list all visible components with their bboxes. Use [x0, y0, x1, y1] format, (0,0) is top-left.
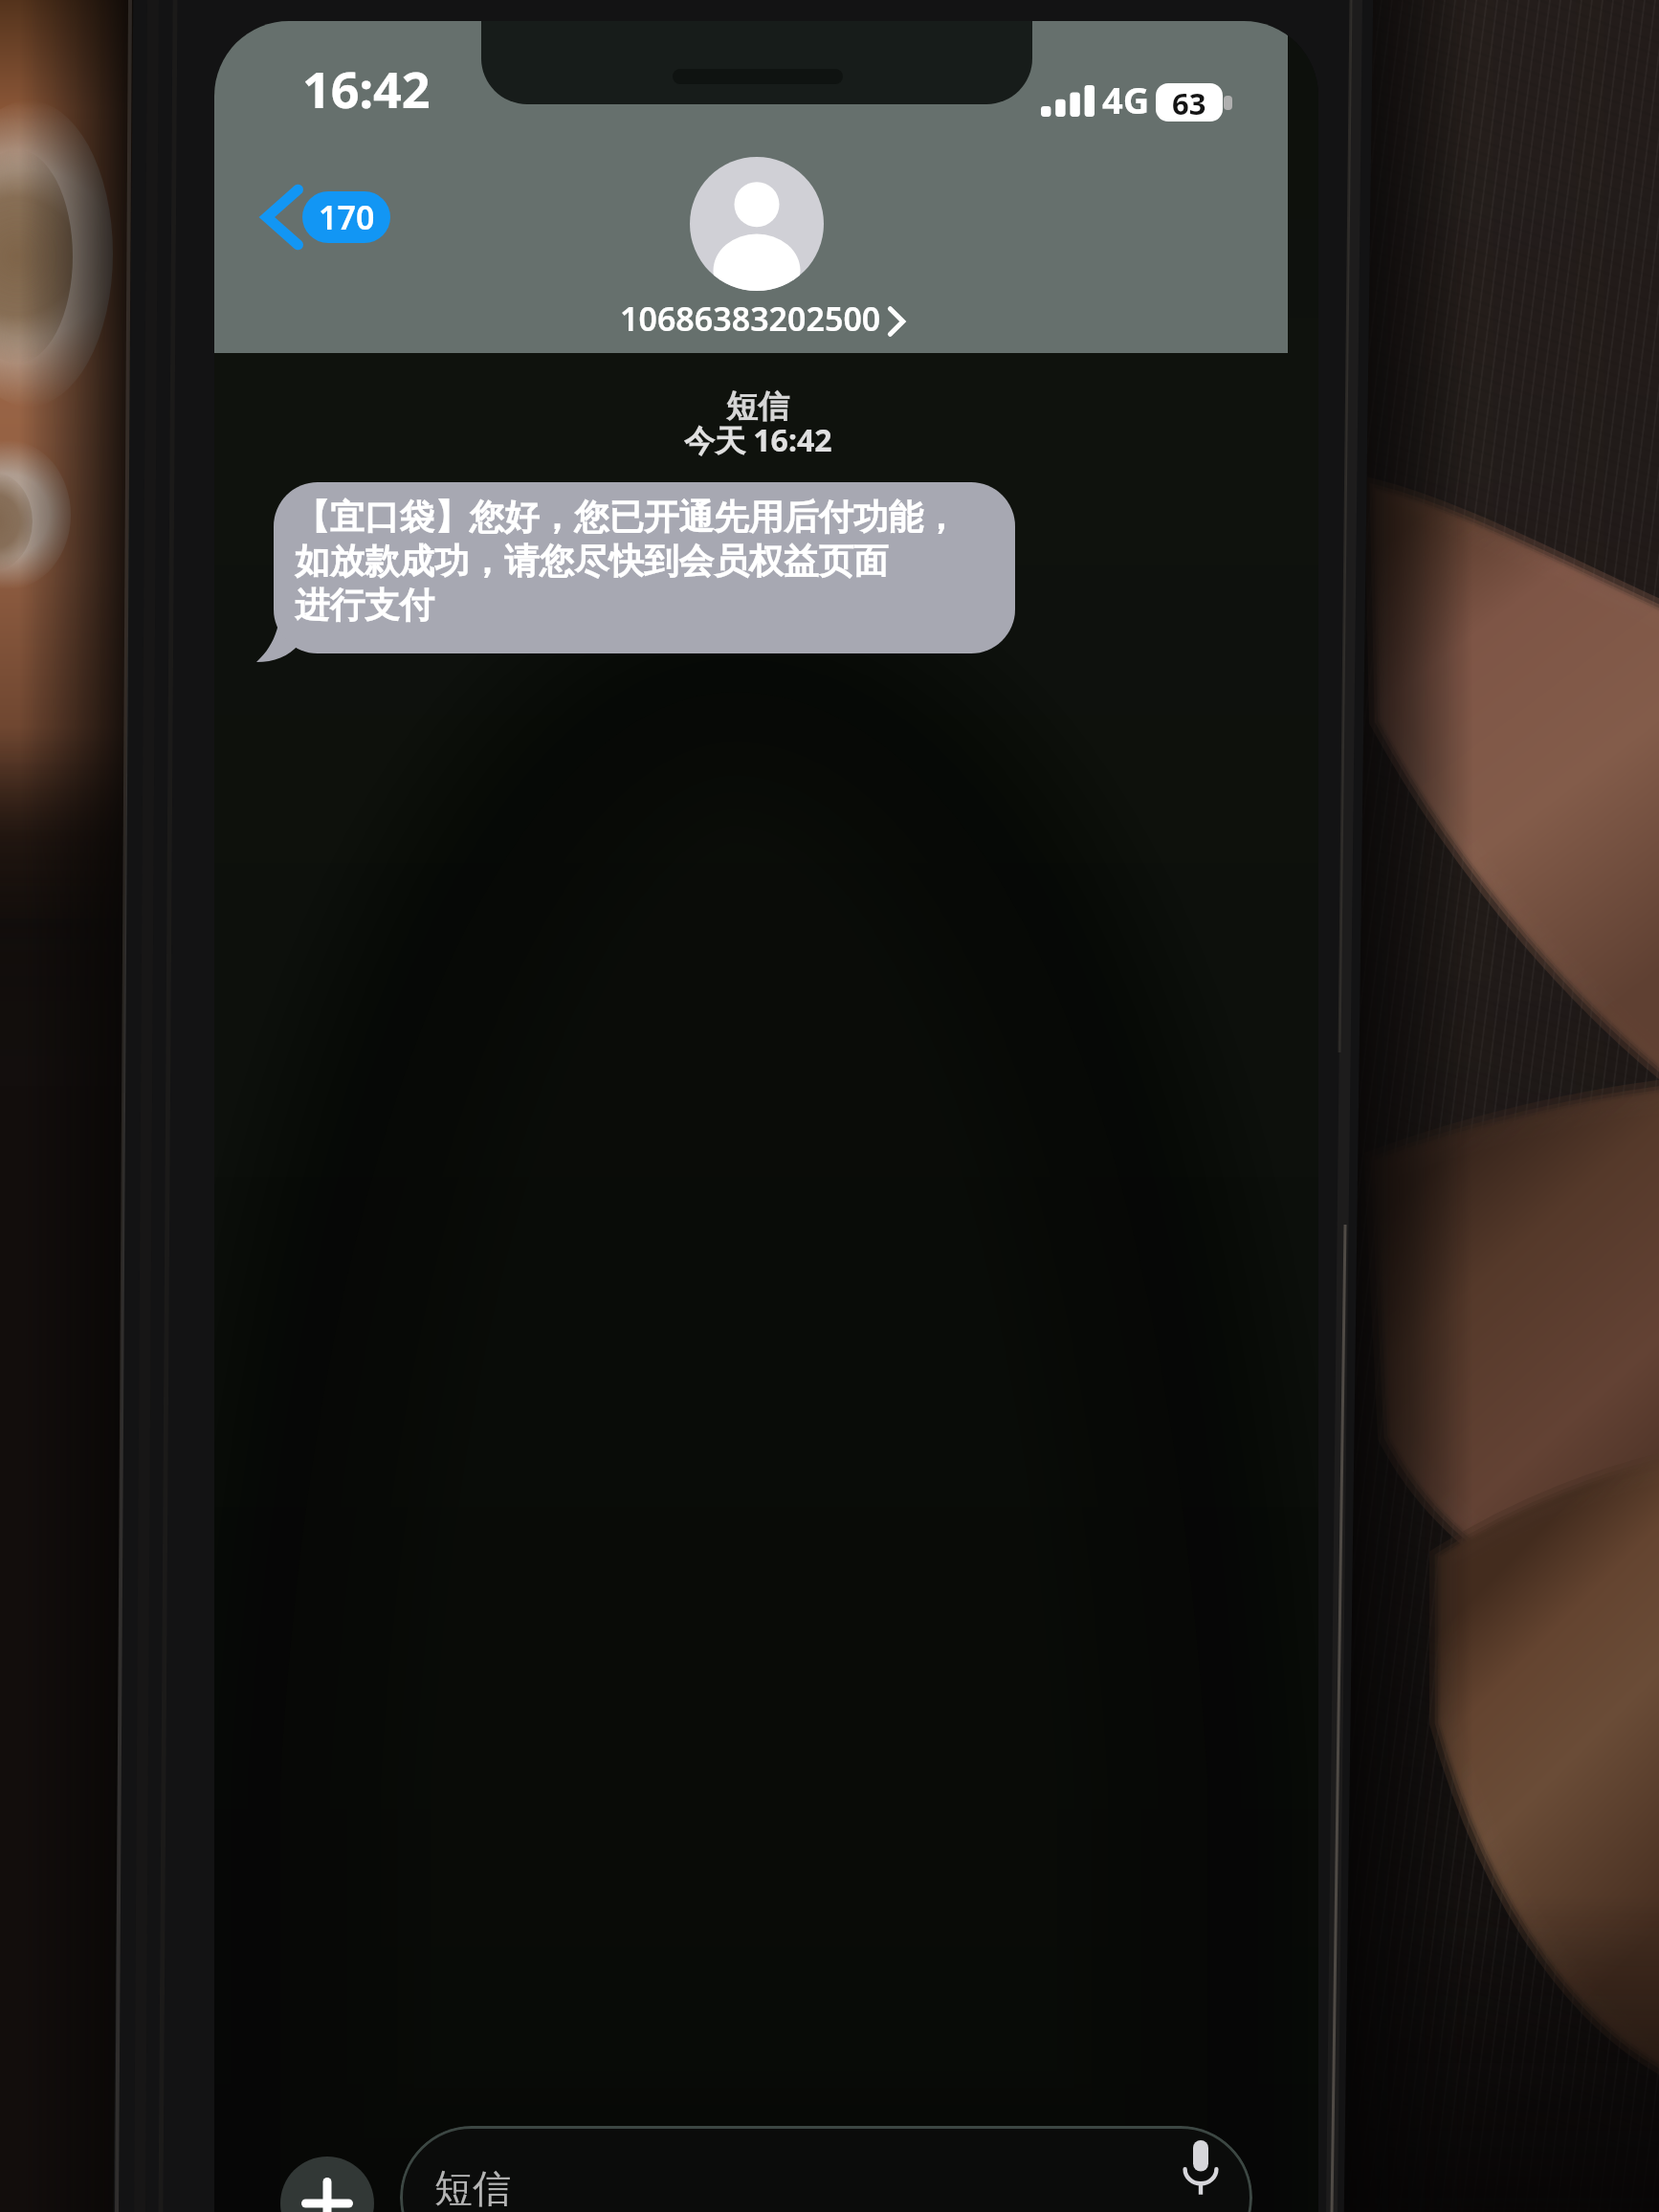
staticText: 短信	[434, 2164, 511, 2212]
staticText: 短信	[726, 387, 789, 427]
staticText: 170	[319, 195, 375, 239]
button[interactable]: 短信	[400, 2126, 1252, 2212]
staticText: 16:42	[302, 55, 431, 122]
staticText: 进行支付	[295, 584, 434, 628]
staticText: 10686383202500	[620, 297, 881, 341]
other: Voice message	[1182, 2140, 1220, 2196]
button[interactable]: Add attachment	[280, 2157, 374, 2212]
staticText: 如放款成功，请您尽快到会员权益页面	[295, 540, 889, 584]
button[interactable]: 【宜口袋】您好，您已开通先用后付功能，	[274, 482, 1015, 653]
button[interactable]: Contact details	[690, 157, 824, 291]
staticText: 4G	[1102, 75, 1150, 124]
button[interactable]: Back, 170 conversations	[259, 187, 389, 248]
button[interactable]: 10686383202500	[620, 297, 899, 341]
staticText: 【宜口袋】您好，您已开通先用后付功能，	[295, 496, 959, 540]
staticText: 63	[1172, 83, 1206, 122]
staticText: 今天 16:42	[684, 419, 832, 461]
